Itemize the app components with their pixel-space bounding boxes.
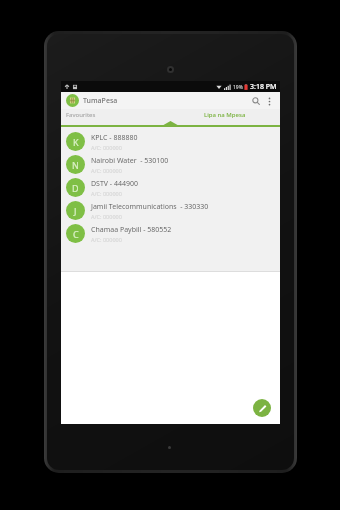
staticText: C xyxy=(73,228,79,240)
button[interactable]: Search xyxy=(249,94,263,108)
button[interactable]: Lipa na Mpesa xyxy=(170,109,280,121)
staticText: 19% xyxy=(233,84,243,91)
staticText: Jamii Telecommunications - 330330 xyxy=(91,202,209,212)
staticText: A/C: 000000 xyxy=(91,236,122,243)
staticText: TumaPesa xyxy=(83,96,118,106)
button[interactable]: J xyxy=(61,199,280,222)
staticText: N xyxy=(72,159,79,171)
button[interactable]: More options xyxy=(263,95,275,107)
staticText: A/C: 000000 xyxy=(91,167,122,174)
staticText: A/C: 000000 xyxy=(91,144,122,151)
staticText: J xyxy=(74,205,77,217)
button[interactable]: Favourites xyxy=(61,109,171,121)
staticText: D xyxy=(72,182,79,194)
button[interactable]: C xyxy=(61,222,280,245)
button[interactable]: Compose xyxy=(253,399,271,417)
button[interactable]: K xyxy=(61,130,280,153)
staticText: Chamaa Paybill - 580552 xyxy=(91,225,172,235)
staticText: K xyxy=(73,136,79,148)
button[interactable]: D xyxy=(61,176,280,199)
button[interactable]: N xyxy=(61,153,280,176)
staticText: DSTV - 444900 xyxy=(91,179,138,189)
staticText: Nairobi Water - 530100 xyxy=(91,156,169,166)
staticText: A/C: 000000 xyxy=(91,213,122,220)
staticText: A/C: 000000 xyxy=(91,190,122,197)
staticText: 3:18 PM xyxy=(250,82,277,92)
staticText: Lipa na Mpesa xyxy=(204,111,246,119)
staticText: Favourites xyxy=(66,111,96,119)
staticText: KPLC - 888880 xyxy=(91,133,138,143)
